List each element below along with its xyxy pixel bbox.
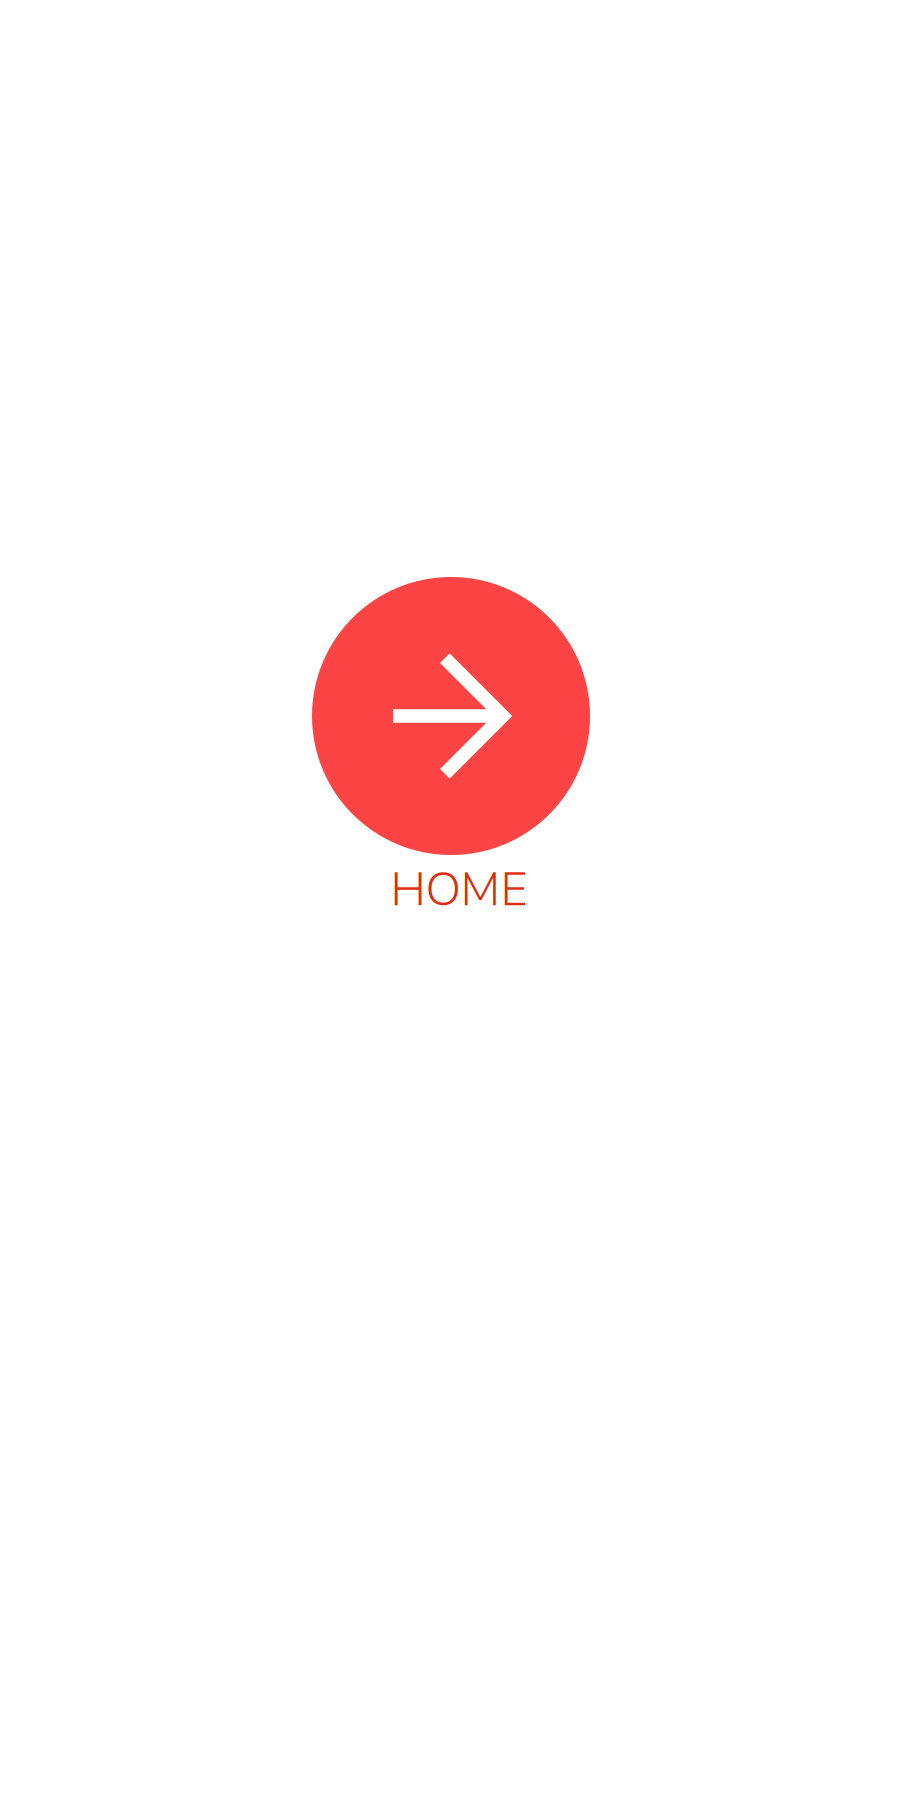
button[interactable]: Home <box>312 577 590 922</box>
staticText: HOME <box>390 858 527 922</box>
